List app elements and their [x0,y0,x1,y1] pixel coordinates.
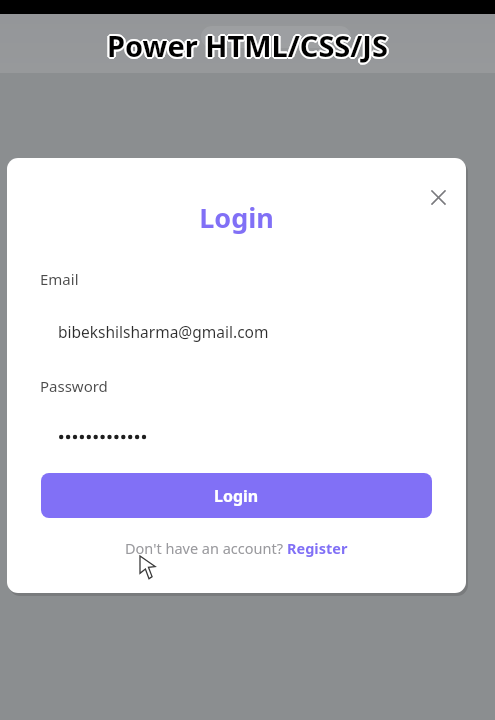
staticText: Power HTML/CSS/JS [107,28,388,67]
staticText: Power HTML/CSS/JS [108,27,389,66]
button[interactable]: Close [423,182,453,212]
staticText: bibekshilsharma@gmail.com [58,321,269,342]
button[interactable]: bibekshilsharma@gmail.com [41,316,432,346]
staticText: Login [7,199,466,236]
staticText: Power HTML/CSS/JS [108,25,389,64]
button[interactable]: Login [41,473,432,518]
staticText: Power HTML/CSS/JS [105,26,386,65]
staticText: Password [40,376,108,396]
staticText: Register [287,538,348,558]
staticText: Power HTML/CSS/JS [107,24,388,63]
button[interactable]: Register [287,538,348,558]
staticText: Login [214,485,259,507]
staticText: Power HTML/CSS/JS [109,26,390,65]
staticText: Power HTML/CSS/JS [106,25,387,64]
staticText: Power HTML/CSS/JS [106,27,387,66]
staticText: Email [40,269,79,289]
staticText: Power HTML/CSS/JS [107,26,388,65]
staticText: Don't have an account? [125,538,287,558]
button[interactable] [41,424,432,450]
